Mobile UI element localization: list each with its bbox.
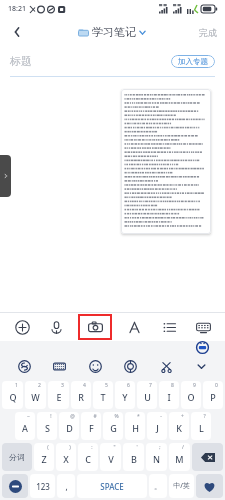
button[interactable]: " — [100, 443, 121, 471]
button[interactable]: 7 — [137, 381, 157, 409]
button[interactable]: , — [57, 474, 75, 498]
button[interactable]: 。 — [149, 474, 167, 498]
staticText: 4 — [83, 382, 86, 389]
button[interactable]: 123 — [30, 474, 55, 498]
staticText: I — [167, 391, 171, 403]
button[interactable]: 5 — [93, 381, 113, 409]
staticText: E — [56, 391, 62, 403]
button[interactable]: 4 — [71, 381, 91, 409]
staticText: % — [114, 413, 119, 420]
staticText: 中/英 — [173, 481, 190, 491]
staticText: 18:21 — [8, 4, 26, 14]
button[interactable]: Back — [4, 19, 30, 45]
staticText: / — [182, 444, 184, 451]
staticText: T — [100, 391, 106, 403]
staticText: J — [156, 422, 159, 434]
button[interactable]: Theme — [118, 354, 142, 378]
button[interactable]: Sogou — [12, 354, 36, 378]
button[interactable]: 6 — [115, 381, 135, 409]
button[interactable]: Text format — [121, 314, 147, 340]
button[interactable]: ~ — [15, 412, 35, 440]
staticText: 3 — [61, 382, 64, 389]
button[interactable]: 完成 — [199, 27, 217, 38]
button[interactable]: Emoji — [2, 474, 28, 498]
button[interactable]: % — [103, 412, 123, 440]
button[interactable]: 加入专题 — [171, 55, 215, 68]
button[interactable]: Keyboard layout — [47, 354, 71, 378]
button[interactable]: ; — [146, 443, 167, 471]
staticText: " — [113, 444, 116, 451]
button[interactable]: 中/英 — [169, 474, 194, 498]
button[interactable]: 学习笔记 — [78, 25, 147, 39]
button[interactable]: ! — [37, 412, 57, 440]
button[interactable]: Voice input — [43, 314, 69, 340]
staticText: 0 — [215, 382, 218, 389]
staticText: ( — [47, 444, 49, 451]
staticText: @ — [70, 413, 75, 420]
button[interactable]: # — [81, 412, 101, 440]
staticText: Z — [41, 453, 47, 465]
button[interactable]: Emoji — [83, 354, 107, 378]
button[interactable]: Keyboard — [190, 314, 216, 340]
staticText: P — [210, 391, 216, 403]
button[interactable]: 9 — [181, 381, 201, 409]
button[interactable]: 3 — [48, 381, 69, 409]
button[interactable]: Clip tools — [154, 354, 178, 378]
staticText: , — [65, 481, 68, 492]
button[interactable]: ' — [123, 443, 144, 471]
staticText: 学习笔记 — [92, 25, 136, 39]
staticText: 7 — [149, 382, 152, 389]
button[interactable]: List — [156, 314, 182, 340]
button[interactable]: 2 — [25, 381, 46, 409]
staticText: ? — [203, 413, 206, 420]
button[interactable]: Enter — [196, 474, 223, 498]
staticText: ) — [69, 444, 71, 451]
staticText: R — [78, 391, 84, 403]
staticText: O — [187, 391, 195, 403]
staticText: - — [160, 413, 162, 420]
staticText: # — [93, 413, 97, 420]
staticText: C — [85, 453, 91, 465]
staticText: U — [144, 391, 151, 403]
staticText: 标题 — [10, 54, 32, 68]
button[interactable]: 8 — [159, 381, 179, 409]
staticText: 8 — [171, 382, 174, 389]
button[interactable]: SPACE — [77, 474, 147, 498]
button[interactable]: Backspace — [192, 443, 223, 471]
button[interactable]: ? — [191, 412, 211, 440]
staticText: W — [31, 391, 40, 403]
staticText: 分词 — [9, 452, 25, 462]
button[interactable]: - — [147, 412, 167, 440]
button[interactable]: / — [169, 443, 190, 471]
button[interactable]: * — [125, 412, 145, 440]
button[interactable]: ( — [34, 443, 54, 471]
staticText: * — [137, 413, 140, 420]
staticText: K — [176, 422, 182, 434]
staticText: : — [91, 444, 93, 451]
button[interactable]: @ — [59, 412, 79, 440]
button[interactable]: Expand panel — [0, 155, 11, 197]
staticText: Q — [9, 391, 17, 403]
button[interactable]: : — [78, 443, 98, 471]
staticText: B — [131, 453, 137, 465]
button[interactable]: 0 — [203, 381, 223, 409]
staticText: 123 — [36, 481, 50, 492]
staticText: 2 — [38, 382, 41, 389]
button[interactable]: ) — [56, 443, 76, 471]
staticText: X — [63, 453, 69, 465]
button[interactable]: Add — [9, 314, 35, 340]
staticText: N — [153, 453, 160, 465]
staticText: 加入专题 — [178, 57, 208, 66]
button[interactable]: Clipboard — [196, 341, 209, 354]
button[interactable]: + — [169, 412, 189, 440]
staticText: + — [181, 413, 184, 420]
staticText: ; — [159, 444, 161, 451]
staticText: G — [110, 422, 117, 434]
button[interactable]: Hide keyboard — [189, 354, 213, 378]
button[interactable]: Camera — [78, 314, 112, 340]
staticText: V — [108, 453, 114, 465]
staticText: 。 — [154, 481, 162, 491]
button[interactable]: 分词 — [2, 443, 32, 471]
staticText: ~ — [27, 413, 30, 420]
button[interactable]: 1 — [2, 381, 23, 409]
